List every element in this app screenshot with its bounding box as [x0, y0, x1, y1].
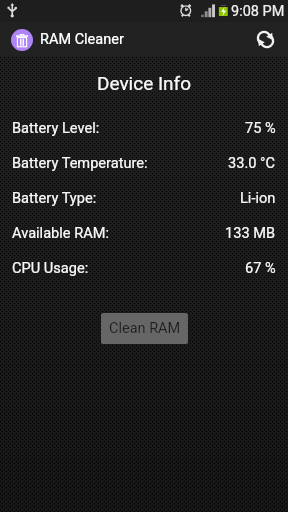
staticText: Battery Temperature: [12, 154, 148, 171]
staticText: RAM Cleaner [40, 31, 124, 48]
staticText: 67 % [245, 259, 276, 276]
staticText: Available RAM: [12, 224, 109, 241]
staticText: 9:08 PM [231, 3, 285, 20]
staticText: 33.0 °C [228, 154, 276, 171]
staticText: Device Info [0, 72, 288, 94]
button[interactable]: Refresh [248, 22, 283, 57]
staticText: 133 MB [225, 224, 276, 241]
staticText: Battery Level: [12, 119, 100, 136]
staticText: Clean RAM [109, 320, 181, 337]
staticText: CPU Usage: [12, 259, 89, 276]
button[interactable]: Clean RAM [101, 313, 188, 344]
staticText: Li-ion [240, 189, 276, 206]
staticText: Battery Type: [12, 189, 97, 206]
staticText: 75 % [245, 119, 276, 136]
